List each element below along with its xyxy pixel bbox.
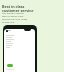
button[interactable]: Continue bbox=[7, 64, 13, 67]
staticText: Our friendly support team is always here… bbox=[2, 12, 29, 24]
staticText: Best in class customer service bbox=[2, 4, 36, 13]
